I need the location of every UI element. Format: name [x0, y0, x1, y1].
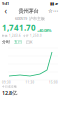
- staticText: ⋯: [53, 8, 58, 14]
- button[interactable]: Favorite: [48, 7, 53, 15]
- button[interactable]: 分时: [2, 39, 10, 44]
- staticText: +40.08%: [37, 28, 52, 33]
- staticText: 今日成交额: [2, 85, 17, 88]
- button[interactable]: 日K: [26, 39, 32, 45]
- staticText: ‹: [4, 6, 6, 16]
- staticText: 09:30: [2, 81, 11, 84]
- staticText: ▮▮ ▰: [50, 1, 58, 6]
- staticText: 贵州茅台: [18, 8, 38, 14]
- staticText: 600519 沪市主板: [15, 16, 45, 21]
- staticText: 9:41: [2, 1, 9, 6]
- staticText: 11:30: [25, 81, 34, 84]
- button[interactable]: Back: [2, 7, 9, 15]
- button[interactable]: More: [53, 7, 58, 15]
- staticText: 昨收 1,243.6 今开 1,250.0: [2, 34, 42, 37]
- staticText: ☆: [48, 8, 53, 14]
- staticText: 分时: [2, 39, 10, 44]
- staticText: 日K: [26, 39, 32, 45]
- staticText: 15:00: [49, 81, 58, 84]
- staticText: 1,741.70: [2, 22, 36, 33]
- button[interactable]: 五日: [14, 39, 22, 44]
- staticText: 12.8亿: [2, 89, 17, 96]
- staticText: 五日: [14, 39, 22, 44]
